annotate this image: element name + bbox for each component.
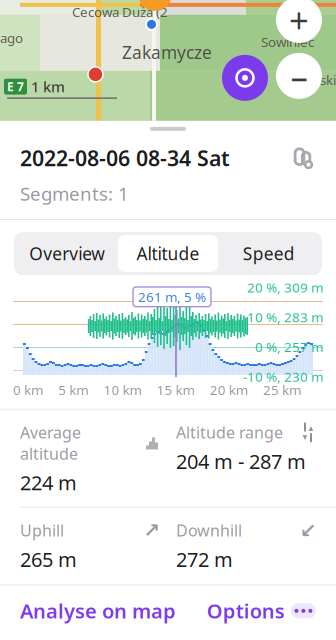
- staticText: 10 km: [103, 381, 141, 399]
- staticText: 0 km: [13, 381, 43, 399]
- staticText: 25 km: [263, 381, 301, 399]
- staticText: ago: [0, 29, 23, 47]
- staticText: +: [289, 0, 309, 43]
- staticText: ↗: [143, 519, 160, 542]
- staticText: ski: [320, 71, 336, 89]
- staticText: 1 km: [31, 77, 65, 96]
- staticText: ↙: [299, 519, 316, 542]
- staticText: Speed: [243, 242, 295, 265]
- staticText: Altitude: [136, 242, 199, 265]
- button[interactable]: Zoom out: [276, 53, 322, 99]
- staticText: Average altitude: [20, 422, 81, 464]
- button[interactable]: Overview: [17, 235, 118, 272]
- staticText: 265 m: [20, 546, 77, 573]
- staticText: 20 km: [210, 381, 248, 399]
- button[interactable]: My location: [222, 55, 268, 101]
- staticText: ▴: [308, 422, 313, 433]
- staticText: 10 %, 283 m: [247, 308, 323, 326]
- staticText: 15 km: [157, 381, 195, 399]
- staticText: –: [290, 53, 307, 99]
- staticText: Downhill: [176, 520, 242, 541]
- staticText: 261 m, 5 %: [138, 288, 206, 306]
- staticText: 224 m: [20, 469, 77, 496]
- staticText: 0 %, 257 m: [255, 338, 323, 356]
- staticText: 5 km: [58, 381, 88, 399]
- staticText: Segments: 1: [20, 181, 129, 206]
- staticText: 204 m - 287 m: [176, 448, 306, 475]
- staticText: -10 %, 230 m: [243, 368, 323, 385]
- button[interactable]: Analyse on map: [20, 586, 176, 636]
- staticText: 272 m: [176, 546, 233, 573]
- staticText: 2022-08-06 08-34 Sat: [20, 144, 230, 172]
- staticText: E 7: [7, 79, 24, 95]
- staticText: Altitude range: [176, 422, 283, 443]
- button[interactable]: Options: [207, 586, 316, 636]
- staticText: Options: [207, 598, 285, 624]
- button[interactable]: Zoom in: [276, 0, 322, 43]
- staticText: Cecowa Duża (2: [72, 3, 168, 21]
- button[interactable]: Speed: [218, 235, 319, 272]
- staticText: ▾: [302, 431, 307, 442]
- staticText: Zakamycze: [122, 41, 212, 64]
- staticText: Sowiniec: [261, 33, 314, 51]
- button[interactable]: Track: [290, 145, 316, 171]
- staticText: 20 %, 309 m: [247, 279, 323, 296]
- button[interactable]: Altitude: [118, 235, 218, 272]
- staticText: Uphill: [20, 520, 64, 541]
- staticText: Analyse on map: [20, 598, 176, 624]
- staticText: Overview: [29, 242, 105, 265]
